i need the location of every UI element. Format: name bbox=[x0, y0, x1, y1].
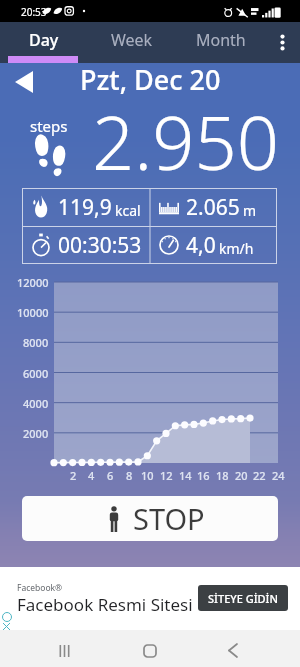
staticText: 119,9 bbox=[58, 193, 112, 222]
staticText: 6 bbox=[107, 468, 114, 482]
staticText: 4000 bbox=[23, 396, 49, 410]
staticText: 12000 bbox=[17, 275, 49, 289]
staticText: 2 bbox=[70, 468, 77, 482]
button[interactable]: Month bbox=[176, 22, 265, 63]
staticText: Pzt, Dec 20 bbox=[80, 61, 221, 98]
staticText: 4 bbox=[88, 468, 95, 482]
staticText: 12 bbox=[160, 468, 173, 482]
staticText: 2.065 bbox=[186, 193, 240, 222]
button[interactable]: Home bbox=[129, 630, 170, 667]
button[interactable]: 00:30:53 bbox=[22, 226, 149, 264]
staticText: 20 bbox=[235, 468, 248, 482]
staticText: 00:30:53 bbox=[58, 231, 142, 260]
button[interactable]: More options bbox=[265, 22, 300, 63]
staticText: 20:53 bbox=[21, 5, 47, 19]
staticText: m bbox=[243, 201, 257, 220]
staticText: 2.950 bbox=[92, 91, 280, 192]
staticText: kcal bbox=[115, 201, 141, 220]
staticText: 2000 bbox=[23, 426, 49, 440]
staticText: 10 bbox=[141, 468, 154, 482]
staticText: km/h bbox=[219, 239, 254, 258]
staticText: 14 bbox=[179, 468, 192, 482]
staticText: Week bbox=[111, 29, 153, 51]
staticText: Facebook Resmi Sitesi bbox=[17, 593, 193, 616]
staticText: steps bbox=[30, 116, 68, 136]
button[interactable]: 119,9 bbox=[22, 188, 149, 226]
staticText: 6000 bbox=[23, 366, 49, 380]
button[interactable]: SİTEYE GİDİN bbox=[198, 585, 288, 611]
staticText: 22 bbox=[253, 468, 266, 482]
button[interactable]: Previous day bbox=[4, 63, 44, 101]
staticText: 10000 bbox=[17, 305, 49, 319]
staticText: 18 bbox=[216, 468, 229, 482]
staticText: 8000 bbox=[23, 335, 49, 349]
button[interactable]: Week bbox=[88, 22, 176, 63]
staticText: SİTEYE GİDİN bbox=[208, 591, 279, 606]
staticText: 8 bbox=[126, 468, 133, 482]
staticText: Day bbox=[29, 29, 59, 51]
staticText: 24 bbox=[272, 468, 285, 482]
button[interactable]: Recents bbox=[44, 630, 85, 667]
staticText: 16 bbox=[197, 468, 210, 482]
button[interactable]: 4,0 bbox=[150, 226, 277, 264]
button[interactable]: 2.065 bbox=[150, 188, 277, 226]
staticText: STOP bbox=[133, 499, 205, 538]
staticText: 4,0 bbox=[186, 231, 216, 260]
staticText: Facebook® bbox=[17, 582, 63, 594]
button[interactable]: STOP bbox=[22, 496, 278, 541]
button[interactable]: Back bbox=[212, 630, 253, 667]
staticText: Month bbox=[196, 29, 246, 51]
button[interactable]: Day bbox=[0, 22, 88, 63]
